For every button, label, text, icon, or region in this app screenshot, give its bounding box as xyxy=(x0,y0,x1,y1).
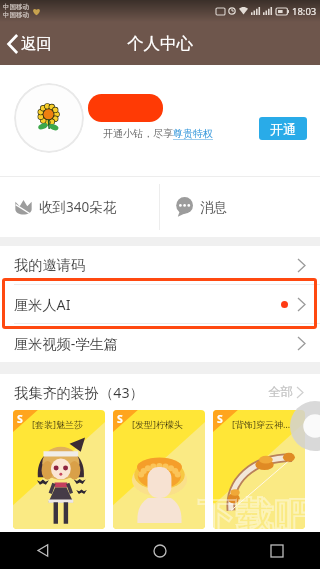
staticText: [套装]魅兰莎 xyxy=(32,418,83,430)
staticText: 开通小钻，尽享 xyxy=(103,127,173,140)
staticText: [发型]柠檬头 xyxy=(132,418,183,430)
button[interactable]: 消息 xyxy=(160,177,320,237)
staticText: 厘米视频-学生篇 xyxy=(14,334,118,353)
staticText: 返回 xyxy=(21,34,52,54)
staticText: 18:03 xyxy=(292,5,317,18)
button[interactable]: 我的邀请码 xyxy=(0,246,320,284)
button[interactable]: 收到340朵花 xyxy=(0,177,159,237)
button[interactable]: Home xyxy=(139,532,181,569)
staticText: 尊贵特权 xyxy=(173,127,213,140)
staticText: 消息 xyxy=(200,199,227,216)
staticText: S xyxy=(217,412,223,426)
button[interactable]: 开通 xyxy=(259,117,307,140)
button[interactable]: 厘米视频-学生篇 xyxy=(0,324,320,362)
staticText: 中国移动 xyxy=(3,11,29,19)
button[interactable]: Avatar xyxy=(14,83,84,153)
staticText: 个人中心 xyxy=(127,33,193,54)
staticText: [背饰]穿云神… xyxy=(232,418,291,430)
button[interactable]: S xyxy=(213,410,305,529)
staticText: S xyxy=(117,412,123,426)
staticText: 收到340朵花 xyxy=(39,198,117,216)
staticText: 中国移动 xyxy=(3,3,29,11)
button[interactable]: Back xyxy=(22,532,64,569)
button[interactable]: 全部 xyxy=(264,380,307,404)
button[interactable]: S xyxy=(13,410,105,529)
staticText: 下载吧 xyxy=(198,493,312,541)
button[interactable]: S xyxy=(113,410,205,529)
button[interactable]: 返回 xyxy=(0,22,62,65)
staticText: 我的邀请码 xyxy=(14,256,85,274)
staticText: 我集齐的装扮（43） xyxy=(14,383,144,402)
staticText: S xyxy=(17,412,23,426)
staticText: 厘米人AI xyxy=(14,295,71,314)
staticText: 全部 xyxy=(268,384,293,400)
staticText: 开通 xyxy=(270,121,296,137)
button[interactable]: 厘米人AI xyxy=(0,285,320,323)
button[interactable]: Recents xyxy=(256,532,298,569)
